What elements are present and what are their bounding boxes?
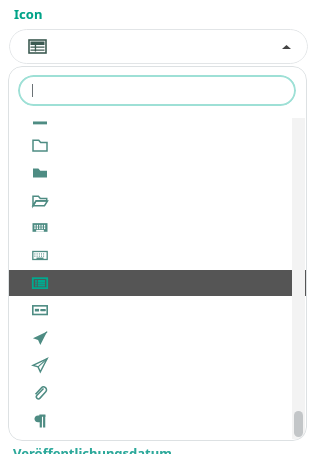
button[interactable]: Icon option 0 — [8, 104, 307, 130]
button[interactable]: Icon option 7 — [8, 297, 307, 323]
button[interactable]: List alt icon, selected — [8, 270, 307, 296]
button[interactable]: Icon option 10 — [8, 380, 307, 406]
button[interactable]: Icon option 5 — [8, 242, 307, 268]
button[interactable]: Icon option 9 — [8, 352, 307, 378]
button[interactable]: Scrollbar — [294, 411, 303, 437]
button[interactable]: Icon option 2 — [8, 159, 307, 185]
button[interactable]: Icon option 11 — [8, 408, 307, 434]
button[interactable]: Icon option 6 — [8, 270, 307, 296]
button[interactable]: Icon select, collapse — [9, 29, 308, 64]
button[interactable]: Icon option 8 — [8, 325, 307, 351]
button[interactable]: Icon option 12 — [8, 435, 307, 441]
button[interactable]: Icon option 1 — [8, 132, 307, 158]
staticText: Icon — [14, 5, 43, 23]
button[interactable]: Search icons — [18, 75, 296, 106]
button[interactable]: Icon option 4 — [8, 214, 307, 240]
button[interactable]: Icon option 3 — [8, 187, 307, 213]
staticText: Veröffentlichungsdatum — [13, 444, 172, 454]
